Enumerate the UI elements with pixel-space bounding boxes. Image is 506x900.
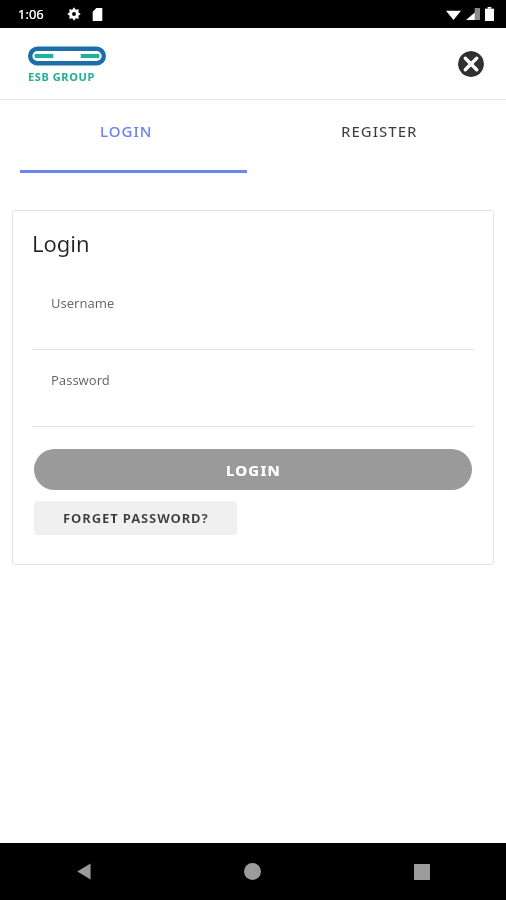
button[interactable]: FORGET PASSWORD?	[34, 501, 237, 535]
button[interactable]: LOGIN	[34, 449, 472, 490]
staticText: ESB GROUP	[28, 69, 95, 84]
staticText: Login	[32, 228, 90, 258]
staticText: Password	[51, 371, 110, 389]
button[interactable]: Home	[168, 843, 337, 900]
button[interactable]: Recents	[337, 843, 506, 900]
staticText: Username	[51, 294, 115, 312]
button[interactable]: Close	[458, 51, 484, 77]
staticText: LOGIN	[226, 460, 281, 480]
button[interactable]: Back	[0, 843, 168, 900]
staticText: REGISTER	[341, 121, 418, 141]
staticText: LOGIN	[100, 121, 153, 141]
staticText: 1:06	[18, 5, 44, 23]
button[interactable]: LOGIN	[0, 100, 253, 176]
staticText: FORGET PASSWORD?	[63, 509, 209, 527]
button[interactable]: REGISTER	[253, 100, 506, 176]
